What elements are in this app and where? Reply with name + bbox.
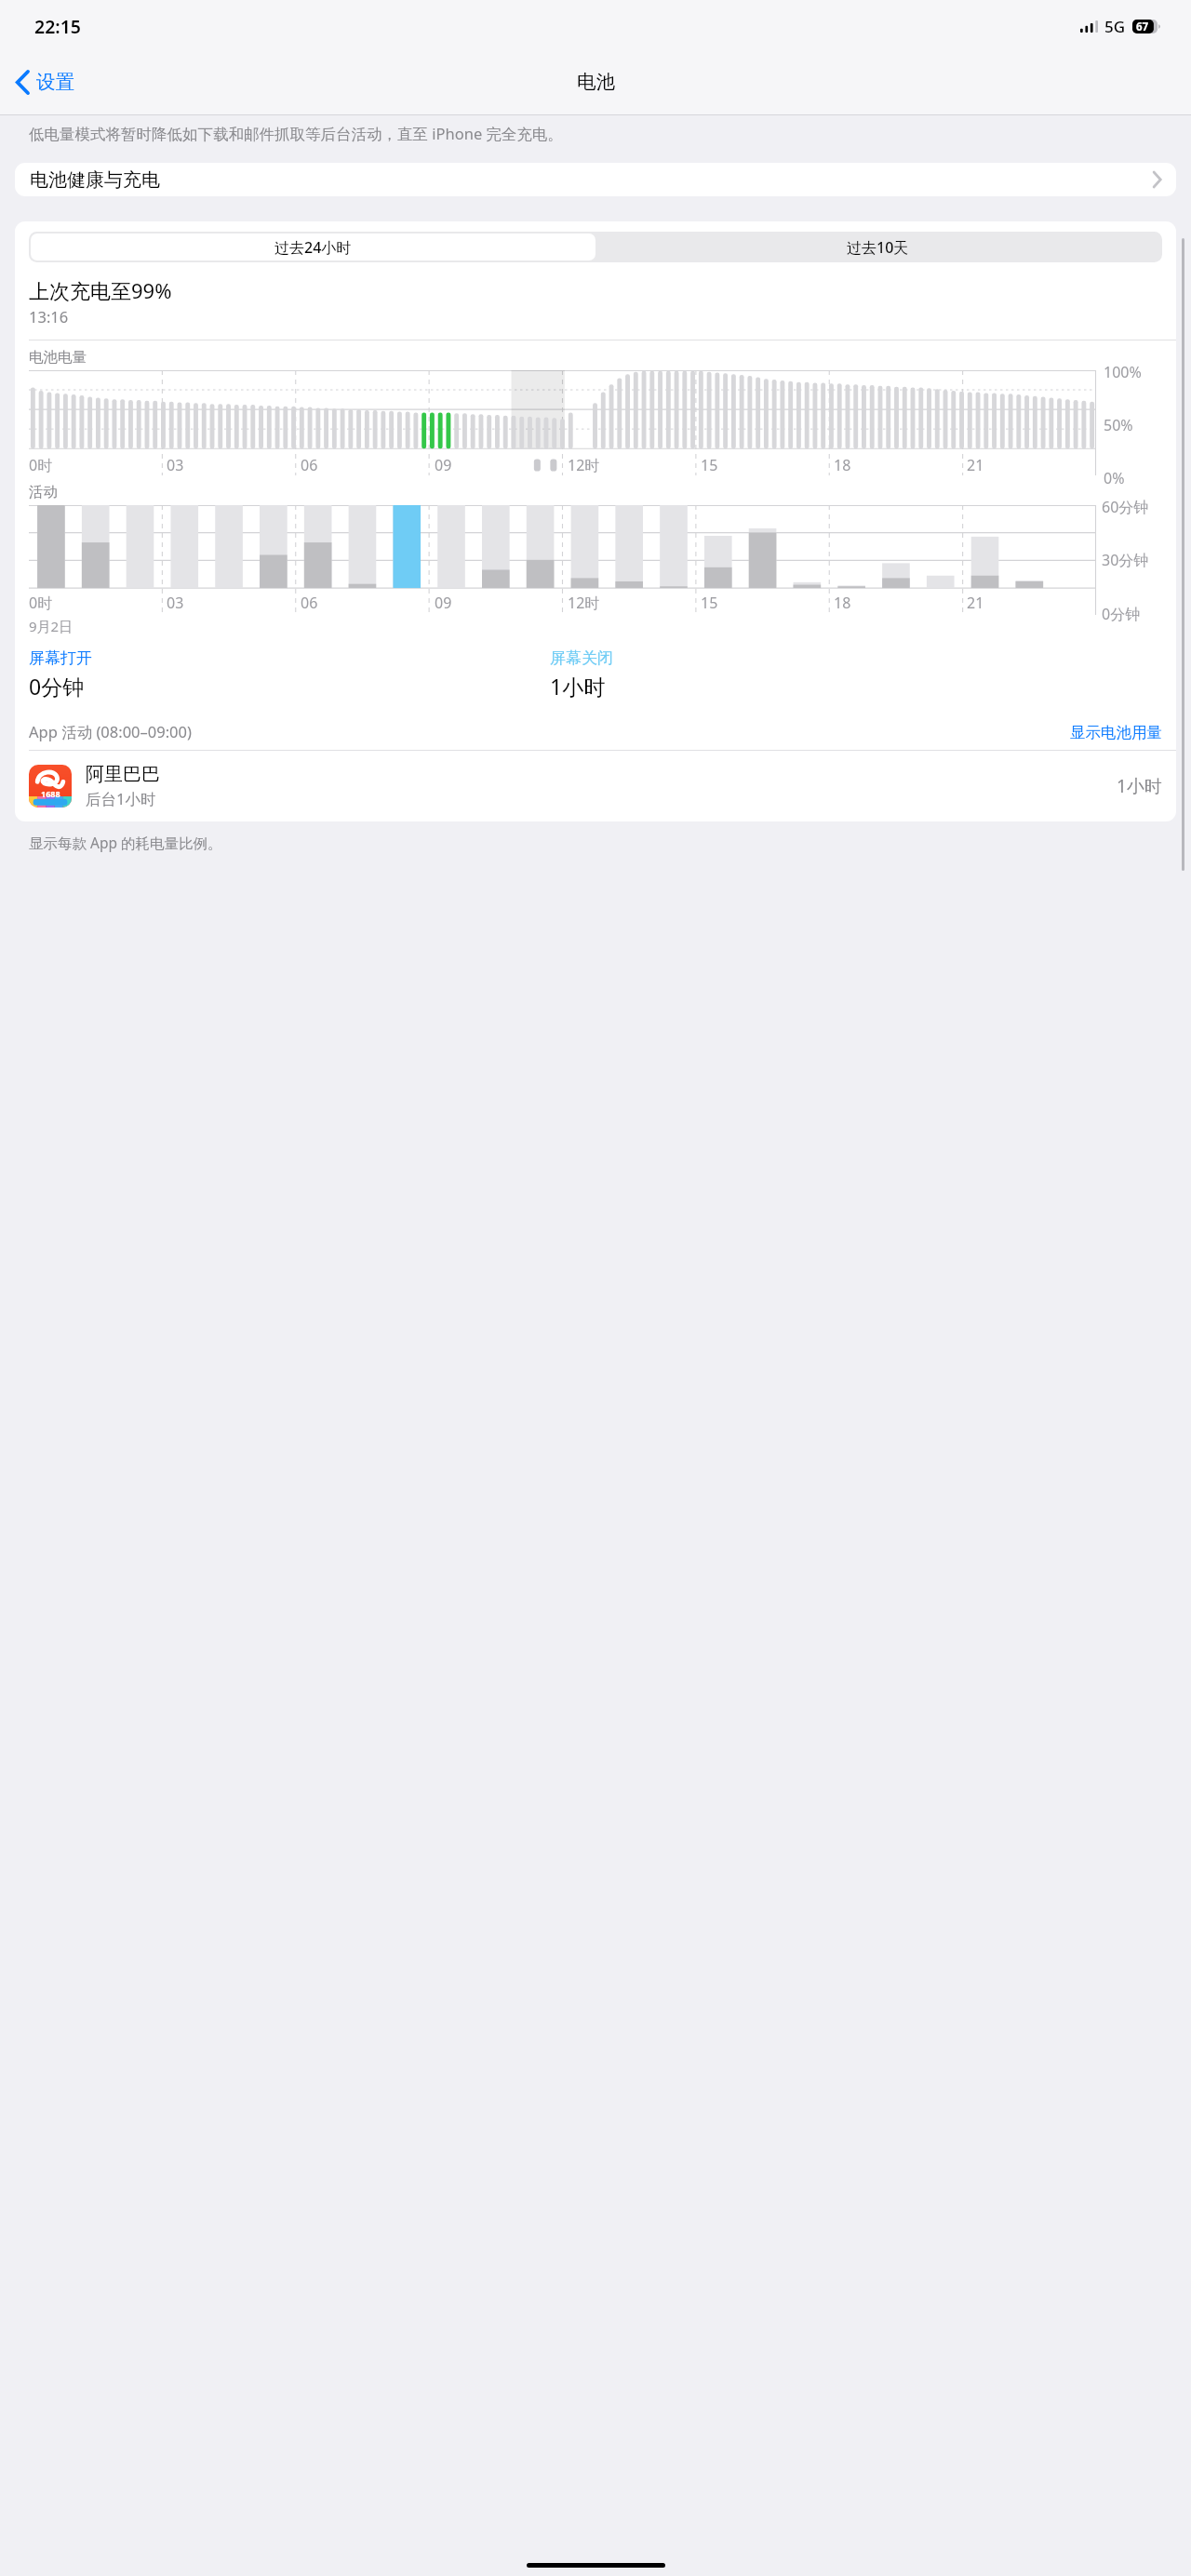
staticText: 过去24小时 xyxy=(274,237,352,258)
staticText: 21 xyxy=(967,593,984,613)
button[interactable]: 1688 xyxy=(15,751,1176,821)
staticText: 03 xyxy=(167,455,184,475)
staticText: 屏幕关闭 xyxy=(550,648,613,668)
staticText: 12时 xyxy=(568,455,600,475)
staticText: 100% xyxy=(1104,362,1142,382)
staticText: 15 xyxy=(701,593,718,613)
staticText: 09 xyxy=(435,455,452,475)
staticText: 67 xyxy=(1136,20,1149,33)
staticText: 18 xyxy=(834,593,851,613)
staticText: 电池 xyxy=(577,70,615,94)
button[interactable]: 过去10天 xyxy=(595,234,1160,260)
staticText: 低电量模式将暂时降低如下载和邮件抓取等后台活动，直至 iPhone 完全充电。 xyxy=(29,123,564,144)
staticText: 活动 xyxy=(29,483,58,501)
button[interactable]: 显示电池用量 xyxy=(1070,723,1162,742)
staticText: 50% xyxy=(1104,415,1133,435)
staticText: 1小时 xyxy=(1117,774,1162,798)
staticText: 1小时 xyxy=(550,672,606,701)
staticText: 13:16 xyxy=(29,306,69,327)
staticText: 15 xyxy=(701,455,718,475)
staticText: 上次充电至99% xyxy=(29,276,172,304)
staticText: 22:15 xyxy=(34,14,81,39)
staticText: 显示电池用量 xyxy=(1070,723,1162,742)
staticText: 60分钟 xyxy=(1102,497,1149,517)
staticText: App 活动 (08:00–09:00) xyxy=(29,721,192,742)
staticText: 0分钟 xyxy=(1102,604,1141,624)
staticText: 显示每款 App 的耗电量比例。 xyxy=(29,833,222,852)
staticText: 18 xyxy=(834,455,851,475)
staticText: 0时 xyxy=(29,593,53,613)
staticText: 12时 xyxy=(568,593,600,613)
staticText: 06 xyxy=(301,593,318,613)
button[interactable]: 电池健康与充电 xyxy=(15,163,1176,196)
staticText: 屏幕打开 xyxy=(29,648,92,668)
staticText: 9月2日 xyxy=(29,617,74,635)
staticText: 0% xyxy=(1104,468,1125,488)
staticText: 21 xyxy=(967,455,984,475)
staticText: 06 xyxy=(301,455,318,475)
staticText: 09 xyxy=(435,593,452,613)
staticText: 30分钟 xyxy=(1102,550,1149,570)
staticText: 电池健康与充电 xyxy=(30,168,160,192)
staticText: 电池电量 xyxy=(29,348,87,367)
staticText: 0分钟 xyxy=(29,672,85,701)
staticText: 设置 xyxy=(36,70,74,94)
staticText: 0时 xyxy=(29,455,53,475)
button[interactable]: 设置 xyxy=(0,56,86,108)
staticText: 5G xyxy=(1104,16,1126,37)
button[interactable]: 过去24小时 xyxy=(31,234,595,260)
staticText: 后台1小时 xyxy=(86,788,156,809)
staticText: 1688 xyxy=(41,788,60,799)
staticText: 过去10天 xyxy=(847,237,909,258)
staticText: 03 xyxy=(167,593,184,613)
staticText: 阿里巴巴 xyxy=(86,763,160,786)
